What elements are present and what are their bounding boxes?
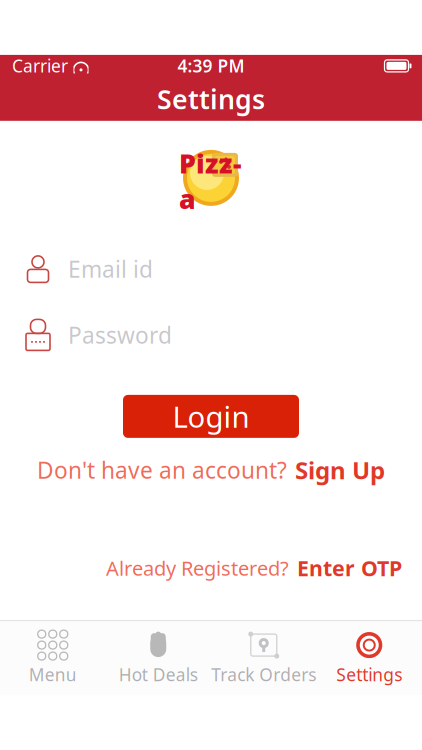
staticText: Track Orders bbox=[211, 663, 316, 686]
button[interactable]: Email id bbox=[0, 247, 422, 291]
staticText: Sign Up bbox=[295, 454, 385, 486]
button[interactable]: Login bbox=[123, 395, 299, 438]
staticText: Enter OTP bbox=[297, 554, 402, 582]
staticText: Carrier bbox=[12, 54, 68, 77]
staticText: Login bbox=[172, 397, 249, 436]
staticText: Password bbox=[68, 320, 172, 350]
staticText: 4:39 PM bbox=[177, 54, 244, 77]
button[interactable]: Don't have an account? bbox=[25, 446, 397, 494]
staticText: Hot Deals bbox=[119, 663, 198, 686]
staticText: Settings bbox=[157, 81, 265, 117]
staticText: Settings bbox=[336, 663, 402, 686]
button[interactable]: Password bbox=[0, 313, 422, 357]
staticText: Menu bbox=[29, 663, 77, 686]
staticText: Already Registered? bbox=[106, 555, 289, 581]
button[interactable]: Hot Deals bbox=[105, 623, 211, 693]
button[interactable]: Menu bbox=[0, 623, 105, 693]
staticText: Don't have an account? bbox=[37, 455, 287, 485]
staticText: Email id bbox=[68, 254, 153, 284]
button[interactable]: Track Orders bbox=[211, 623, 316, 693]
button[interactable]: Settings bbox=[316, 623, 422, 693]
button[interactable]: Already Registered? bbox=[106, 546, 402, 590]
staticText: Pizza bbox=[179, 145, 241, 216]
